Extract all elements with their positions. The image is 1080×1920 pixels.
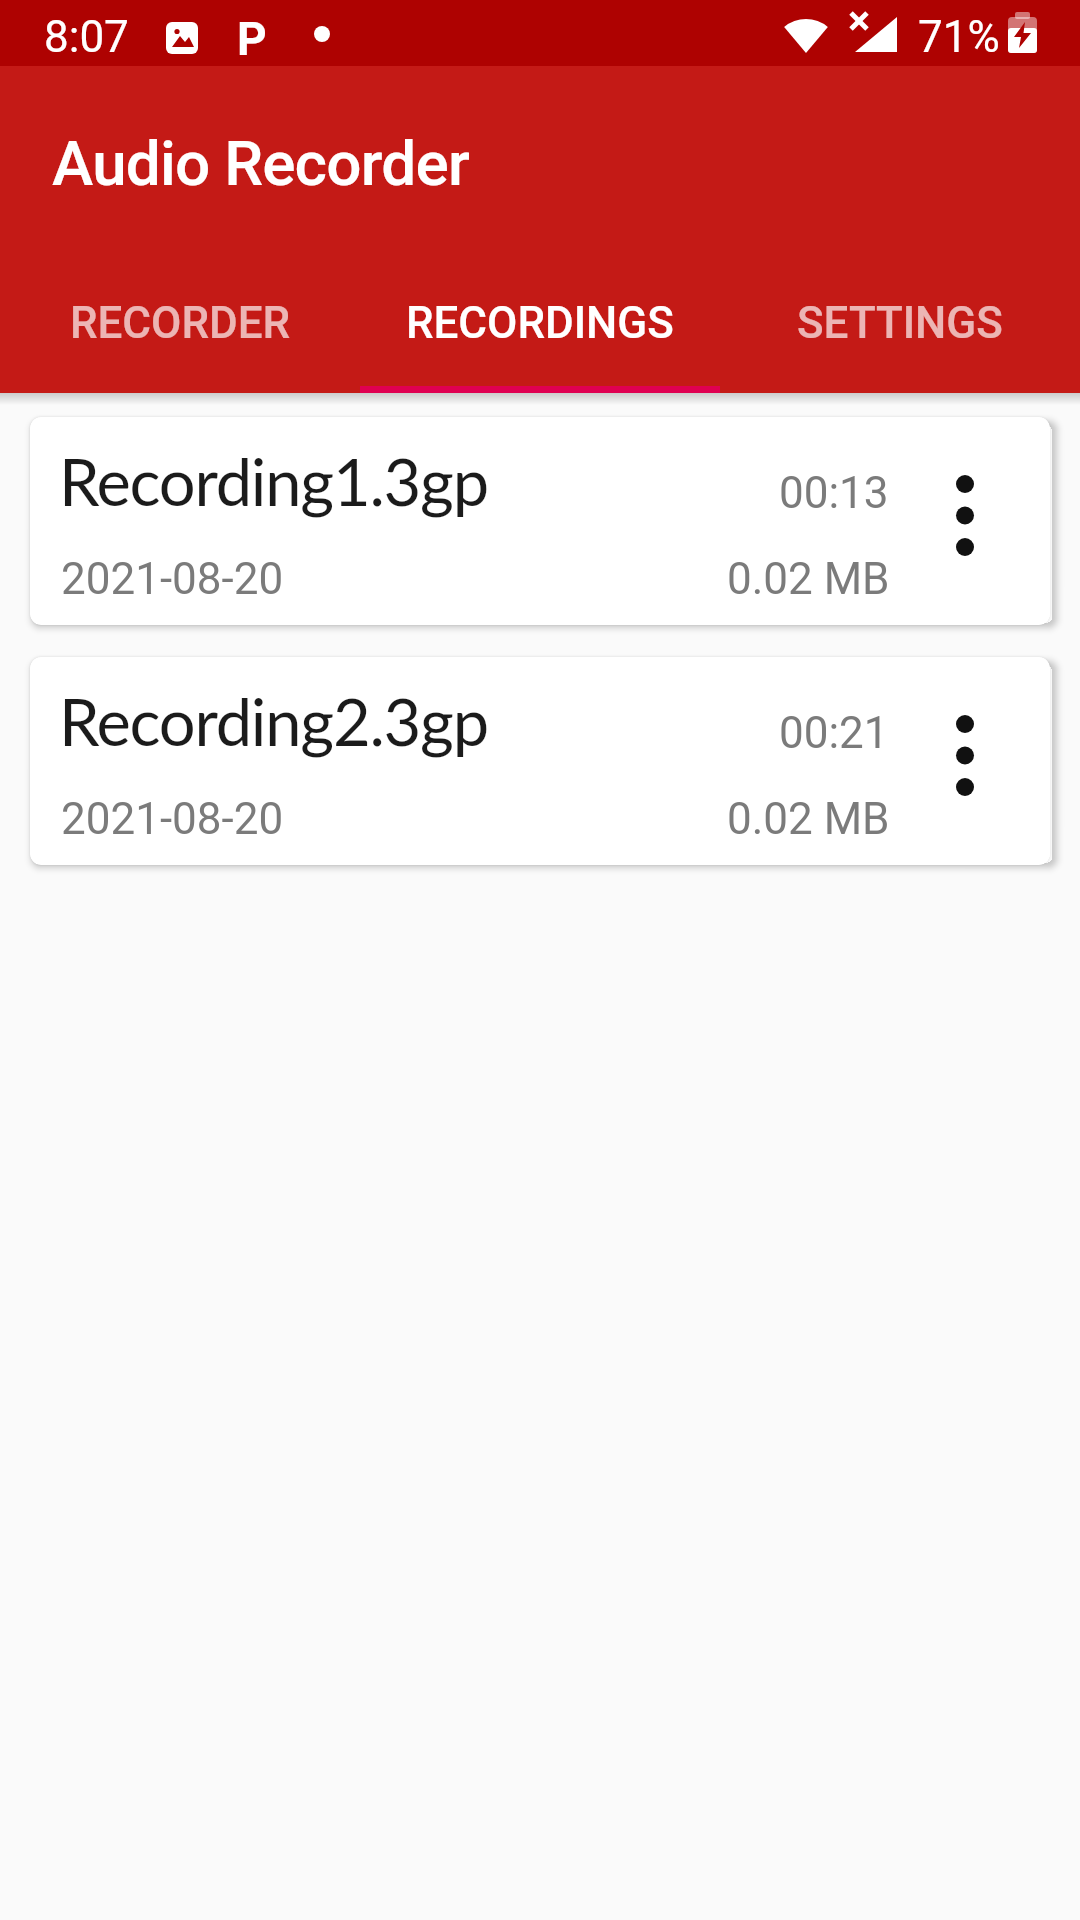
button[interactable]: SETTINGS — [720, 261, 1080, 393]
button[interactable] — [905, 454, 1025, 574]
staticText: 2021-08-20 — [61, 553, 284, 605]
button[interactable] — [905, 694, 1025, 814]
staticText: 00:13 — [779, 467, 889, 519]
button[interactable]: Recording1.3gp — [30, 417, 1050, 625]
staticText: RECORDER — [70, 297, 291, 349]
staticText: SETTINGS — [797, 297, 1003, 349]
staticText: Recording1.3gp — [59, 442, 488, 520]
button[interactable]: Recording2.3gp — [30, 657, 1050, 865]
staticText: 00:21 — [779, 707, 889, 759]
staticText: Audio Recorder — [52, 127, 469, 200]
staticText: 71% — [918, 11, 1000, 63]
button[interactable]: RECORDER — [0, 261, 360, 393]
button[interactable]: RECORDINGS — [360, 261, 720, 393]
staticText: 0.02 MB — [727, 793, 890, 845]
staticText: 0.02 MB — [727, 553, 890, 605]
staticText: P — [237, 12, 267, 66]
staticText: RECORDINGS — [406, 297, 674, 349]
staticText: 2021-08-20 — [61, 793, 284, 845]
staticText: Recording2.3gp — [59, 682, 488, 760]
staticText: 8:07 — [44, 11, 129, 63]
